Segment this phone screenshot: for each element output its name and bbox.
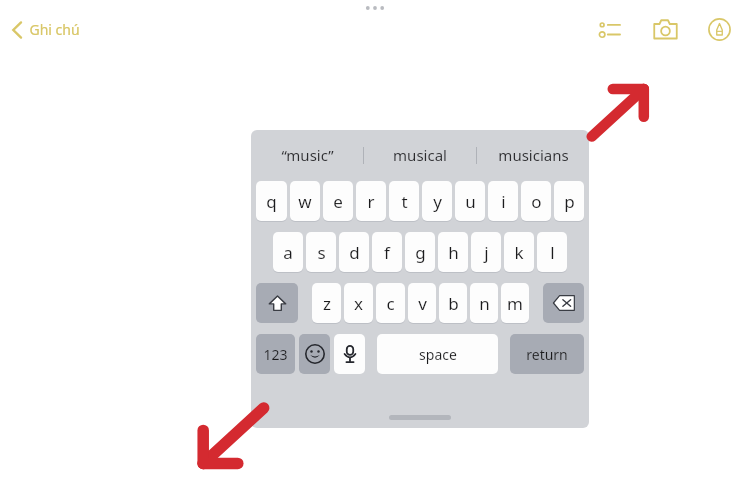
- staticText: x: [354, 292, 363, 315]
- button[interactable]: Camera: [648, 12, 682, 46]
- button[interactable]: k: [504, 232, 534, 272]
- staticText: g: [415, 241, 426, 264]
- button[interactable]: a: [273, 232, 303, 272]
- button[interactable]: s: [306, 232, 336, 272]
- button[interactable]: z: [312, 283, 341, 323]
- button[interactable]: x: [344, 283, 373, 323]
- button[interactable]: Emoji: [299, 334, 330, 374]
- staticText: n: [479, 292, 490, 315]
- button[interactable]: y: [422, 181, 452, 221]
- staticText: c: [386, 292, 395, 315]
- button[interactable]: f: [372, 232, 402, 272]
- staticText: Ghi chú: [29, 20, 80, 39]
- staticText: a: [283, 241, 293, 264]
- button[interactable]: r: [356, 181, 386, 221]
- staticText: m: [507, 292, 523, 315]
- button[interactable]: w: [290, 181, 320, 221]
- staticText: y: [433, 190, 442, 213]
- staticText: u: [465, 190, 476, 213]
- button[interactable]: q: [256, 181, 287, 221]
- staticText: k: [514, 241, 524, 264]
- staticText: musical: [393, 145, 447, 165]
- staticText: d: [349, 241, 360, 264]
- button[interactable]: Checklist: [592, 12, 626, 46]
- button[interactable]: e: [323, 181, 353, 221]
- button[interactable]: c: [376, 283, 405, 323]
- button[interactable]: o: [521, 181, 551, 221]
- button[interactable]: Dictation: [334, 334, 365, 374]
- button[interactable]: return: [510, 334, 584, 374]
- button[interactable]: t: [389, 181, 419, 221]
- staticText: 123: [263, 345, 288, 364]
- button[interactable]: Markup: [702, 12, 736, 46]
- button[interactable]: b: [439, 283, 467, 323]
- staticText: f: [384, 241, 390, 264]
- staticText: t: [401, 190, 408, 213]
- staticText: j: [484, 241, 489, 264]
- button[interactable]: Backspace: [543, 283, 584, 323]
- button[interactable]: p: [554, 181, 584, 221]
- button[interactable]: v: [408, 283, 436, 323]
- button[interactable]: 123: [256, 334, 295, 374]
- staticText: i: [501, 190, 506, 213]
- staticText: space: [419, 345, 457, 364]
- staticText: e: [333, 190, 343, 213]
- staticText: l: [550, 241, 555, 264]
- button[interactable]: “music”: [251, 133, 363, 177]
- staticText: musicians: [498, 145, 569, 165]
- staticText: s: [317, 241, 326, 264]
- button[interactable]: space: [377, 334, 498, 374]
- button[interactable]: musicians: [477, 133, 589, 177]
- button[interactable]: musical: [364, 133, 476, 177]
- button[interactable]: d: [339, 232, 369, 272]
- button[interactable]: Shift: [256, 283, 298, 323]
- staticText: return: [526, 345, 568, 364]
- staticText: b: [448, 292, 459, 315]
- button[interactable]: u: [455, 181, 485, 221]
- button[interactable]: l: [537, 232, 567, 272]
- button[interactable]: h: [438, 232, 468, 272]
- staticText: v: [418, 292, 427, 315]
- button[interactable]: i: [488, 181, 518, 221]
- staticText: z: [323, 292, 331, 315]
- staticText: h: [448, 241, 459, 264]
- button[interactable]: g: [405, 232, 435, 272]
- button[interactable]: j: [471, 232, 501, 272]
- staticText: q: [266, 190, 277, 213]
- staticText: “music”: [281, 145, 334, 165]
- button[interactable]: n: [470, 283, 498, 323]
- staticText: o: [531, 190, 542, 213]
- staticText: r: [367, 190, 375, 213]
- button[interactable]: Ghi chú: [6, 14, 86, 45]
- staticText: p: [564, 190, 575, 213]
- button[interactable]: m: [501, 283, 529, 323]
- staticText: w: [298, 190, 312, 213]
